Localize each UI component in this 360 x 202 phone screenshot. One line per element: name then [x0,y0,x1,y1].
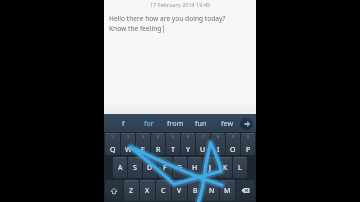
staticText: Z [129,186,134,196]
button[interactable]: few [214,114,240,132]
button[interactable]: A [113,157,127,178]
staticText: Y [186,145,190,155]
staticText: H [192,163,198,173]
staticText: B [193,186,198,196]
staticText: I [217,145,220,155]
button[interactable]: 8 [211,133,225,155]
staticText: L [238,163,242,173]
staticText: G [177,163,183,173]
button[interactable]: 9 [226,133,240,155]
button[interactable]: N [204,180,219,201]
button[interactable]: 7 [196,133,210,155]
button[interactable]: L [233,157,247,178]
staticText: E [141,145,145,155]
button[interactable]: Backspace [236,180,255,201]
staticText: J [209,163,211,173]
button[interactable]: Shift [105,180,123,201]
staticText: F [163,163,167,173]
staticText: for [144,118,154,128]
button[interactable]: F [158,157,172,178]
button[interactable]: H [188,157,202,178]
staticText: 1 [111,134,114,139]
staticText: f [122,118,125,128]
button[interactable]: D [143,157,157,178]
staticText: X [145,186,150,196]
staticText: D [147,163,153,173]
staticText: O [230,145,236,155]
button[interactable]: 1 [105,133,120,155]
button[interactable]: M [220,180,235,201]
button[interactable]: fun [188,114,214,132]
button[interactable]: for [136,114,162,132]
button[interactable]: 5 [166,133,180,155]
staticText: A [118,163,123,173]
staticText: fun [195,118,207,128]
button[interactable]: from [162,114,188,132]
button[interactable]: K [218,157,232,178]
button[interactable]: B [188,180,203,201]
staticText: R [156,145,161,155]
staticText: 9 [232,134,235,139]
staticText: 2 [127,134,130,139]
button[interactable]: V [172,180,187,201]
staticText: 5 [172,134,175,139]
button[interactable]: f [110,114,136,132]
button[interactable]: More suggestions [240,117,253,130]
button[interactable]: 17 February 2014 19:45 [104,0,256,114]
staticText: U [200,145,206,155]
button[interactable]: X [140,180,155,201]
button[interactable]: Z [124,180,139,201]
staticText: P [246,145,251,155]
staticText: Know the feeling [109,24,162,33]
button[interactable]: S [128,157,142,178]
button[interactable]: 6 [181,133,195,155]
button[interactable]: 3 [136,133,150,155]
staticText: 0 [247,134,250,139]
button[interactable]: 2 [121,133,135,155]
staticText: Q [110,145,116,155]
staticText: 7 [202,134,205,139]
staticText: T [171,145,175,155]
staticText: 17 February 2014 19:45 [104,1,256,8]
staticText: N [209,186,215,196]
staticText: 3 [142,134,145,139]
button[interactable]: J [203,157,217,178]
staticText: V [177,186,182,196]
staticText: K [223,163,228,173]
button[interactable]: G [173,157,187,178]
staticText: M [224,186,231,196]
button[interactable]: C [156,180,171,201]
staticText: Hello there how are you doing today? [109,14,226,23]
button[interactable]: 4 [151,133,165,155]
staticText: 6 [187,134,190,139]
staticText: 4 [157,134,160,139]
staticText: from [167,118,184,128]
staticText: C [161,186,166,196]
staticText: few [221,118,234,128]
button[interactable]: 0 [241,133,255,155]
staticText: W [125,145,132,155]
staticText: 8 [217,134,220,139]
staticText: S [133,163,137,173]
